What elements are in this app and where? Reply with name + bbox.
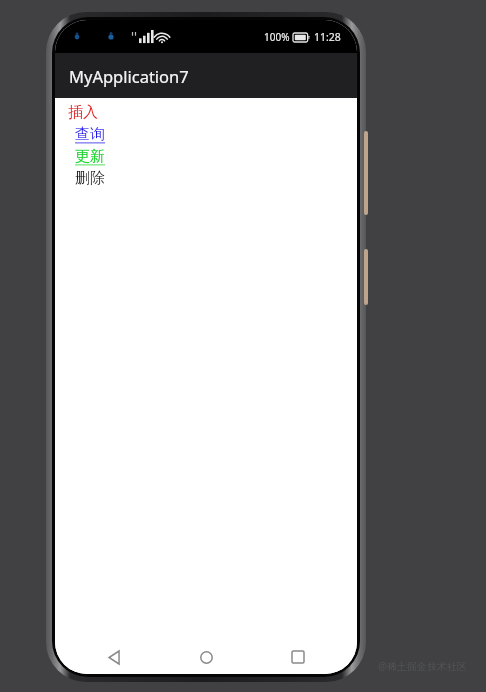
staticText: 插入 xyxy=(68,103,98,122)
button[interactable]: Recent apps xyxy=(281,640,315,674)
button[interactable]: 删除 xyxy=(55,167,357,189)
staticText: 更新 xyxy=(75,147,105,166)
staticText: 11:28 xyxy=(314,30,341,44)
other: Power button xyxy=(364,249,368,305)
staticText: 查询 xyxy=(75,125,105,144)
button[interactable]: Home xyxy=(189,640,223,674)
other: Volume button xyxy=(364,131,368,215)
staticText: 删除 xyxy=(75,169,105,188)
button[interactable]: 插入 xyxy=(55,101,357,123)
staticText: 100% xyxy=(264,30,290,44)
staticText: MyApplication7 xyxy=(69,65,189,87)
button[interactable]: 查询 xyxy=(55,123,357,145)
button[interactable]: 更新 xyxy=(55,145,357,167)
button[interactable]: Back xyxy=(97,640,131,674)
staticText: @稀土掘金技术社区 xyxy=(378,659,467,673)
